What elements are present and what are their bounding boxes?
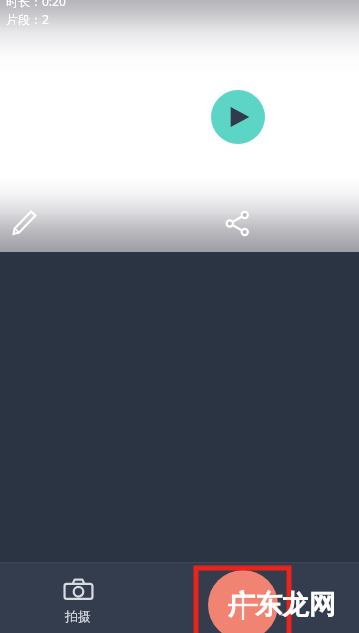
- staticText: 片段：2: [6, 11, 49, 27]
- staticText: 时长：0:20: [6, 0, 66, 9]
- button[interactable]: Add clip: [208, 570, 278, 633]
- button[interactable]: Edit: [1, 201, 46, 246]
- staticText: 拍摄: [65, 608, 91, 624]
- staticText: 广东龙网: [228, 588, 336, 622]
- button[interactable]: Share: [215, 201, 260, 246]
- button[interactable]: 拍摄: [40, 575, 116, 624]
- button[interactable]: Play: [211, 90, 265, 144]
